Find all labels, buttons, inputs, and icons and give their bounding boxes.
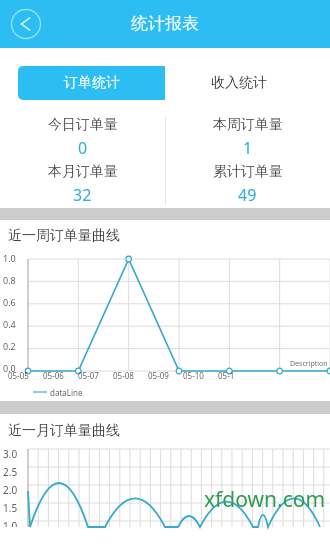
staticText: 本周订单量 — [213, 116, 283, 134]
staticText: 0.8 — [3, 274, 16, 286]
staticText: 3.0 — [3, 447, 18, 461]
staticText: 统计报表 — [131, 13, 199, 34]
staticText: 0 — [78, 137, 88, 159]
staticText: 累计订单量 — [213, 163, 283, 181]
staticText: 2.0 — [3, 483, 18, 497]
staticText: 2.5 — [3, 465, 18, 479]
staticText: 1.5 — [3, 501, 18, 515]
staticText: 32 — [73, 184, 92, 206]
button[interactable]: Back — [10, 8, 42, 40]
staticText: 49 — [238, 184, 257, 206]
staticText: 0.4 — [3, 318, 16, 330]
staticText: 近一月订单量曲线 — [8, 422, 120, 440]
staticText: 近一周订单量曲线 — [8, 227, 120, 245]
staticText: 1.0 — [3, 519, 18, 527]
staticText: 订单统计 — [64, 74, 120, 92]
staticText: 05-10 — [183, 370, 204, 381]
staticText: 0.6 — [3, 296, 16, 308]
staticText: xfdown.com — [204, 485, 326, 514]
staticText: 05-1 — [218, 370, 235, 381]
staticText: 05-06 — [43, 370, 64, 381]
staticText: 1.0 — [3, 252, 16, 264]
staticText: dataLine — [50, 387, 83, 398]
staticText: 05-07 — [78, 370, 99, 381]
button[interactable]: 订单统计 — [18, 66, 165, 100]
staticText: 1 — [243, 137, 253, 159]
staticText: 05-09 — [148, 370, 169, 381]
staticText: 收入统计 — [211, 74, 267, 92]
staticText: 05-05 — [8, 370, 29, 381]
staticText: 0.2 — [3, 340, 16, 352]
staticText: 05-08 — [113, 370, 134, 381]
button[interactable]: 收入统计 — [165, 66, 312, 100]
staticText: 本月订单量 — [48, 163, 118, 181]
staticText: 0.0 — [3, 362, 16, 374]
staticText: 今日订单量 — [48, 116, 118, 134]
staticText: Description — [290, 359, 328, 369]
